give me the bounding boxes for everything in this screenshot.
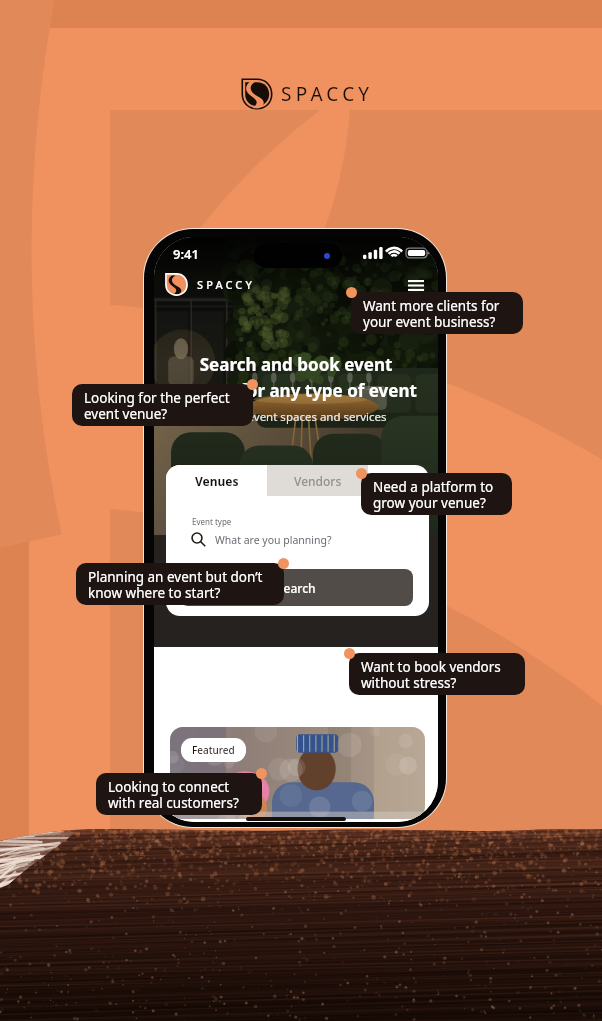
staticText: Event type — [192, 516, 232, 527]
staticText: Looking to connect with real customers? — [108, 778, 239, 812]
staticText: Want more clients for your event busines… — [363, 297, 500, 331]
staticText: 9:41 — [173, 245, 199, 263]
button[interactable]: Venues — [166, 465, 267, 496]
button[interactable]: Looking to connect with real customers? — [96, 773, 262, 815]
button[interactable]: Want to book vendors without stress? — [349, 653, 525, 695]
staticText: Search and book event venues for any typ… — [170, 353, 422, 402]
button[interactable]: Need a platform to grow your venue? — [361, 473, 512, 515]
staticText: Planning an event but don’t know where t… — [88, 568, 263, 602]
button[interactable]: Search — [180, 569, 413, 606]
staticText: Featured — [192, 743, 235, 757]
staticText: Vendors — [294, 473, 342, 489]
staticText: Search — [277, 580, 316, 596]
button[interactable]: SPACCY — [165, 273, 255, 296]
staticText: Need a platform to grow your venue? — [373, 478, 494, 512]
staticText: Looking for the perfect event venue? — [84, 389, 230, 423]
button[interactable]: Looking for the perfect event venue? — [72, 384, 253, 426]
button[interactable]: Featured — [170, 727, 425, 819]
staticText: What are you planning? — [215, 533, 332, 547]
button[interactable]: Want more clients for your event busines… — [351, 292, 523, 334]
staticText: SPACCY — [281, 81, 374, 107]
staticText: Want to book vendors without stress? — [361, 658, 501, 692]
button[interactable]: Open navigation menu — [404, 273, 428, 297]
button[interactable]: Vendors — [267, 465, 368, 496]
button[interactable]: Event type — [180, 506, 416, 563]
staticText: SPACCY — [197, 277, 255, 292]
staticText: Venues — [195, 473, 239, 489]
button[interactable]: Planning an event but don’t know where t… — [76, 563, 284, 605]
staticText: Unique event spaces and services — [205, 409, 387, 425]
